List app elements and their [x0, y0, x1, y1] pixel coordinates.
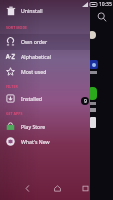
staticText: Installed	[21, 95, 43, 102]
staticText: Uninstall	[21, 7, 43, 14]
button[interactable]: Installed	[0, 91, 90, 106]
button[interactable]: What's New	[0, 134, 90, 149]
staticText: 10:35	[99, 1, 112, 8]
staticText: Play Store	[21, 123, 46, 130]
button[interactable]: Home	[49, 180, 65, 197]
button[interactable]: Play Store	[0, 119, 90, 134]
staticText: GET APPS	[6, 111, 23, 116]
button[interactable]: Search	[95, 10, 109, 24]
staticText: Most used	[21, 68, 47, 75]
button[interactable]: Own order	[0, 34, 90, 49]
button[interactable]: Back	[19, 180, 35, 197]
staticText: 9	[84, 98, 87, 105]
staticText: What's New	[21, 138, 50, 145]
staticText: FILTER	[6, 84, 18, 89]
button[interactable]: Alphabetical	[0, 49, 90, 64]
button[interactable]: Uninstall	[0, 0, 90, 21]
staticText: Alphabetical	[21, 53, 52, 60]
button[interactable]: Most used	[0, 64, 90, 79]
button[interactable]: Recents	[77, 180, 93, 197]
staticText: SORT MODE	[6, 25, 28, 30]
staticText: Own order	[21, 38, 48, 45]
